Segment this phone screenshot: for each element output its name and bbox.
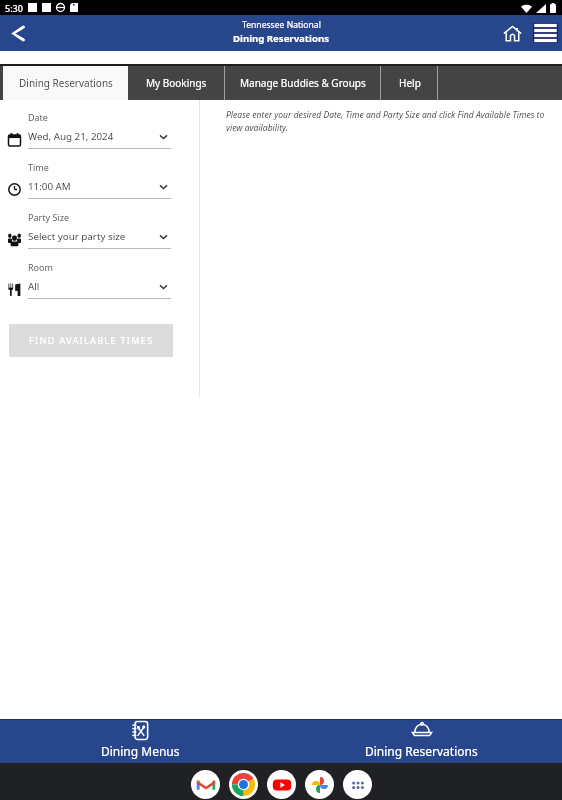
staticText: Tennessee National — [242, 19, 321, 31]
staticText: 5:30 — [5, 2, 23, 14]
button[interactable]: App — [343, 770, 372, 799]
button[interactable]: FIND AVAILABLE TIMES — [9, 324, 173, 357]
staticText: Help — [399, 76, 421, 90]
staticText: My Bookings — [146, 76, 207, 90]
staticText: Dining Reservations — [233, 32, 329, 45]
staticText: Party Size — [28, 211, 69, 223]
staticText: Dining Reservations — [365, 743, 478, 759]
staticText: Please enter your desired Date, Time and… — [226, 109, 561, 133]
button[interactable]: App — [305, 770, 334, 799]
staticText: All — [28, 280, 158, 293]
button[interactable]: Dining Menus — [0, 719, 281, 763]
staticText: Dining Menus — [101, 743, 180, 759]
button[interactable]: App — [191, 770, 220, 799]
staticText: Time — [28, 161, 49, 173]
staticText: Wed, Aug 21, 2024 — [28, 130, 158, 143]
button[interactable]: Dining Reservations — [0, 66, 128, 100]
button[interactable]: My Bookings — [128, 66, 225, 100]
button[interactable]: Select your party size — [28, 230, 171, 249]
staticText: Select your party size — [28, 230, 158, 243]
staticText: Date — [28, 111, 48, 123]
button[interactable]: Manage Buddies & Groups — [225, 66, 381, 100]
button[interactable]: App — [229, 770, 258, 799]
button[interactable]: Home — [496, 17, 529, 50]
staticText: Manage Buddies & Groups — [240, 76, 366, 90]
staticText: FIND AVAILABLE TIMES — [29, 334, 154, 347]
staticText: Room — [28, 261, 53, 273]
staticText: 11:00 AM — [28, 180, 158, 193]
button[interactable]: App — [267, 770, 296, 799]
button[interactable]: Dining Reservations — [281, 719, 562, 763]
button[interactable]: Wed, Aug 21, 2024 — [28, 130, 171, 149]
button[interactable]: 11:00 AM — [28, 180, 171, 199]
button[interactable]: Menu — [529, 15, 562, 51]
button[interactable]: Back — [0, 15, 36, 51]
button[interactable]: All — [28, 280, 171, 299]
staticText: Dining Reservations — [19, 76, 113, 90]
button[interactable]: Help — [381, 66, 438, 100]
